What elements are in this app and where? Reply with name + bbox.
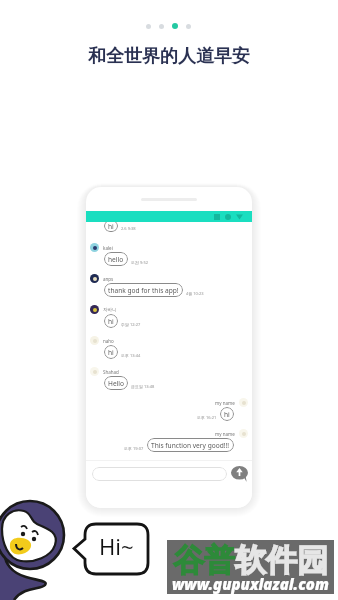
staticText: naho xyxy=(103,338,114,344)
button[interactable]: Send xyxy=(231,465,248,482)
button[interactable]: hello xyxy=(108,252,124,266)
button[interactable]: thank god for this app! xyxy=(108,283,179,297)
button[interactable]: hi xyxy=(224,407,230,421)
staticText: This function very good!!! xyxy=(151,441,230,450)
staticText: my name xyxy=(215,400,235,406)
staticText: hi xyxy=(224,410,230,419)
staticText: hi xyxy=(108,348,114,357)
staticText: 오후 13:44 xyxy=(121,353,141,358)
button[interactable]: Message input xyxy=(92,467,227,481)
staticText: thank god for this app! xyxy=(108,286,179,295)
staticText: 주말 12:27 xyxy=(121,322,141,327)
staticText: 软件园 xyxy=(235,541,328,580)
button[interactable]: hi xyxy=(108,314,114,328)
button[interactable]: Profile xyxy=(225,214,231,220)
staticText: hello xyxy=(108,255,124,264)
button[interactable]: Hello xyxy=(108,376,124,390)
staticText: kalei xyxy=(103,245,113,251)
staticText: Hi~ xyxy=(99,531,134,561)
button[interactable]: This function very good!!! xyxy=(151,438,230,452)
staticText: 오후 19:07 xyxy=(124,446,144,451)
staticText: 和全世界的人道早安 xyxy=(88,45,250,68)
staticText: 오전 9:52 xyxy=(131,260,148,265)
staticText: Shahad xyxy=(103,369,119,375)
staticText: anps xyxy=(103,276,114,282)
staticText: 금요일 13:48 xyxy=(131,384,155,389)
button[interactable]: hi xyxy=(108,222,114,232)
staticText: Hello xyxy=(108,379,124,388)
staticText: my name xyxy=(215,431,235,437)
staticText: www.gupuxlazal.com xyxy=(172,574,329,594)
staticText: hi xyxy=(108,222,114,231)
staticText: 谷普 xyxy=(173,541,235,580)
button[interactable]: More options xyxy=(236,213,243,220)
button[interactable]: hi xyxy=(108,345,114,359)
staticText: 오후 16:21 xyxy=(197,415,217,420)
staticText: 2.6 9:38 xyxy=(121,226,136,231)
staticText: 자바니 xyxy=(103,307,117,313)
staticText: 4월 10:23 xyxy=(186,291,204,296)
staticText: hi xyxy=(108,317,114,326)
